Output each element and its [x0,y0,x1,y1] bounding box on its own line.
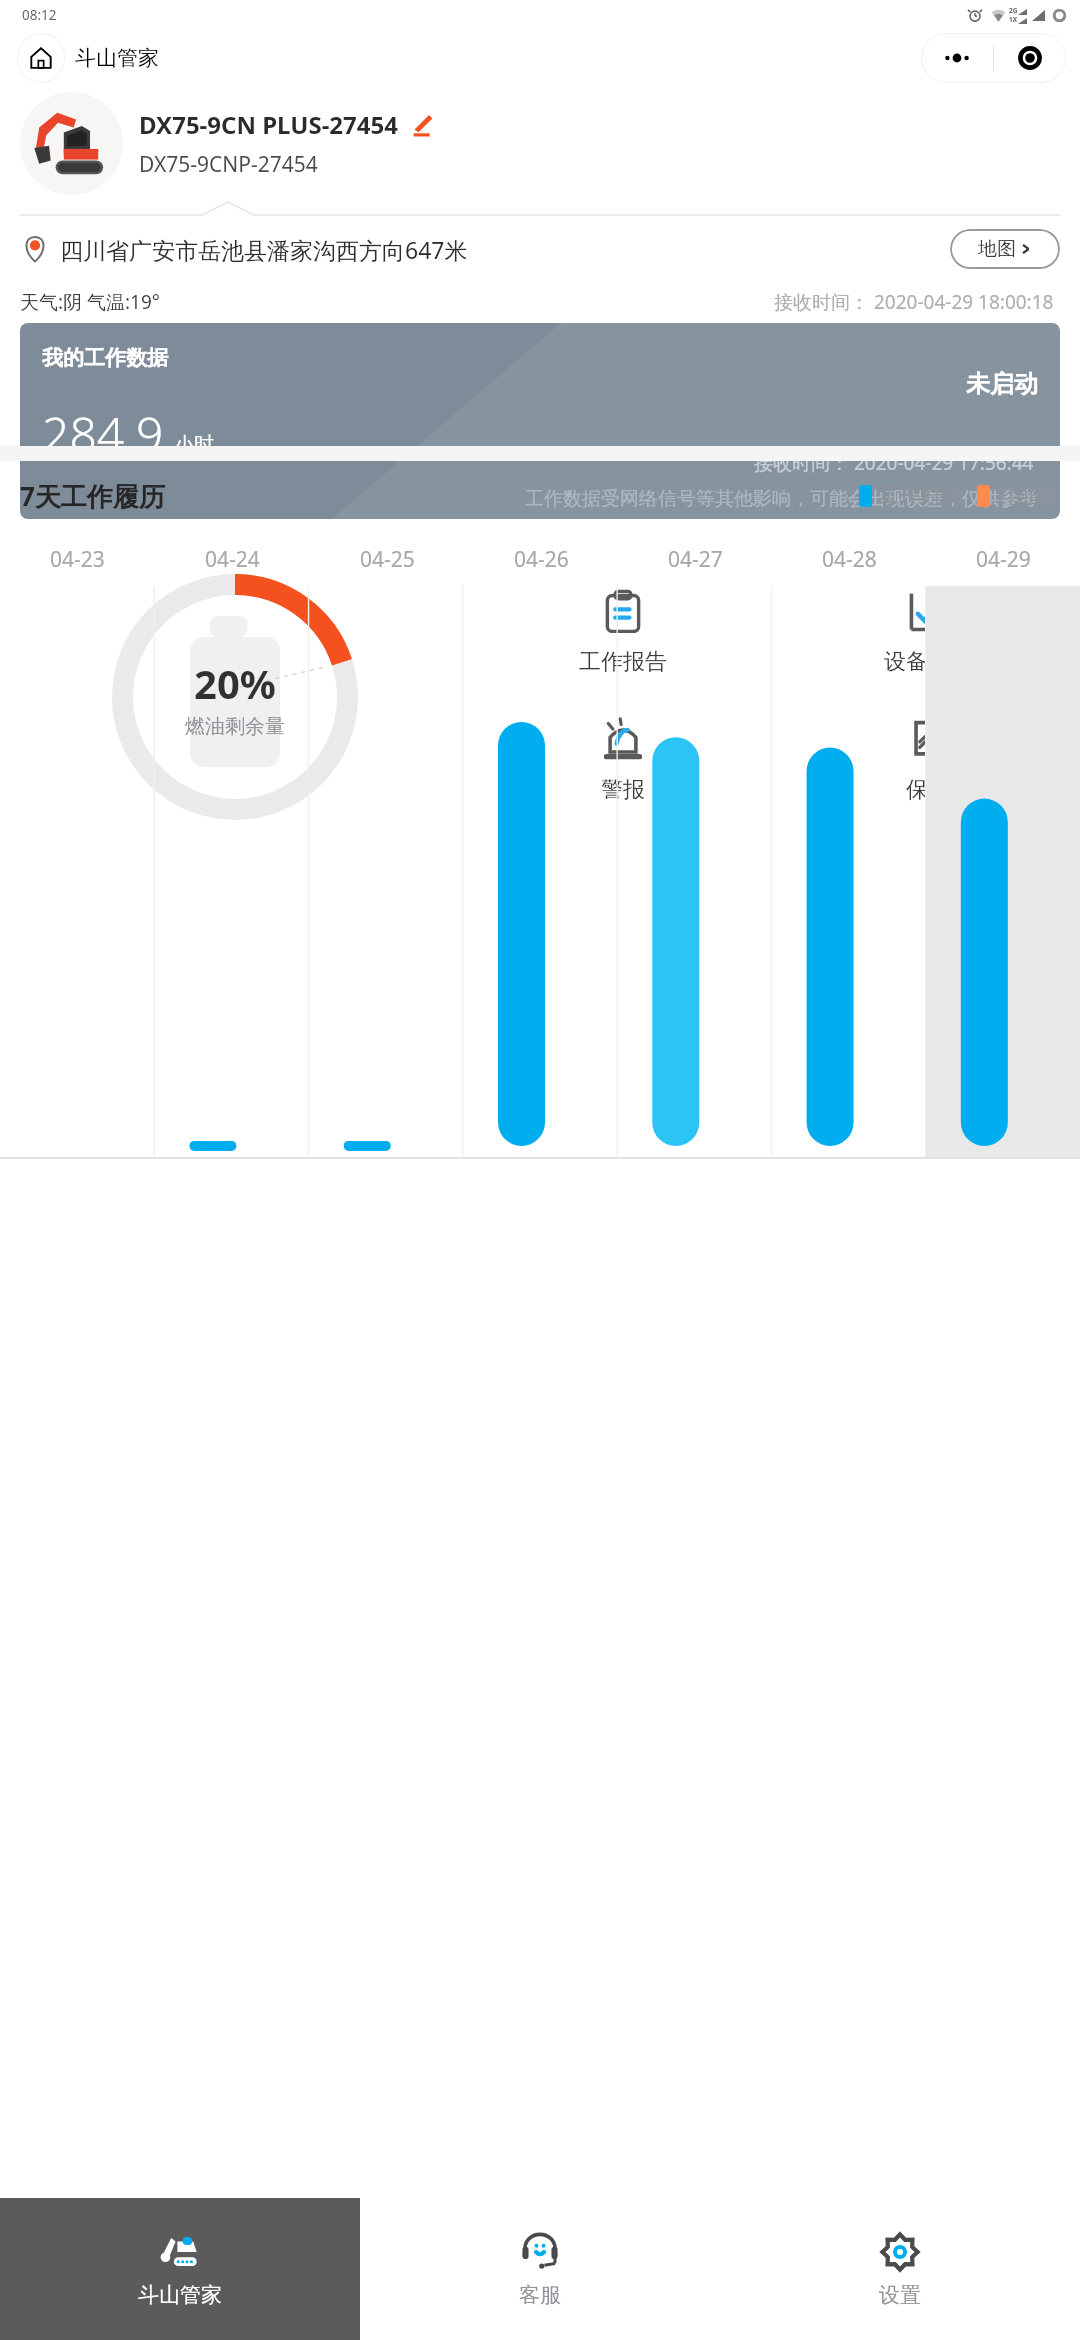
staticText: 斗山管家 [75,45,159,71]
button[interactable]: 我的工作数据 [20,323,1060,519]
staticText: 天气:阴 气温:19° [20,289,160,315]
staticText: 04-25 [360,545,415,574]
staticText: 燃油剩余量 [185,714,285,739]
staticText: 斗山管家 [138,2282,222,2308]
staticText: 工作报告 [579,648,667,676]
staticText: 工作数据受网络信号等其他影响，可能会出现误差，仅供参考 [525,487,1038,511]
staticText: DX75-9CN PLUS-27454 [139,108,398,141]
staticText: 04-26 [514,545,569,574]
button[interactable]: Home [17,33,65,83]
staticText: 接收时间： 2020-04-29 17:56:44 [754,450,1034,476]
staticText: 20% [194,656,276,710]
staticText: 小时 [174,432,214,457]
staticText: 7天工作履历 [20,478,165,514]
button[interactable]: More options [921,33,993,83]
staticText: 1X [1009,15,1018,24]
button[interactable]: 工作报告 [470,584,775,682]
staticText: 04-29 [976,545,1031,574]
button[interactable]: 地图 [950,229,1060,269]
staticText: 耗油量 [997,483,1060,509]
staticText: 警报 [601,776,645,804]
button[interactable]: DX75-9CN PLUS-27454 [0,86,1080,201]
button[interactable]: Close [994,33,1066,83]
button[interactable]: 保养 [775,712,1080,810]
staticText: 客服 [519,2282,561,2308]
staticText: 我的工作数据 [42,345,168,371]
staticText: 未启动 [966,369,1038,399]
staticText: 04-24 [205,545,260,574]
button[interactable]: 设置 [720,2198,1080,2340]
button[interactable]: 四川省广安市岳池县潘家沟西方向647米 [20,217,1060,281]
staticText: 设置 [879,2282,921,2308]
button[interactable]: 设备分析 [775,584,1080,682]
staticText: DX75-9CNP-27454 [139,150,318,179]
staticText: 2G [1009,6,1018,15]
button[interactable]: Edit name [409,112,435,138]
staticText: 设备分析 [884,648,972,676]
staticText: 284.9 [42,401,164,466]
staticText: 04-23 [50,545,105,574]
button[interactable]: 客服 [360,2198,720,2340]
staticText: 04-27 [668,545,723,574]
staticText: 接收时间： 2020-04-29 18:00:18 [774,289,1054,315]
button[interactable]: 斗山管家 [0,2198,360,2340]
staticText: 四川省广安市岳池县潘家沟西方向647米 [60,234,468,265]
staticText: 地图 [978,237,1016,261]
staticText: 08:12 [22,6,57,24]
staticText: 保养 [906,776,950,804]
staticText: 04-28 [822,545,877,574]
button[interactable]: 警报 [470,712,775,810]
staticText: 工作时长 [879,483,963,509]
